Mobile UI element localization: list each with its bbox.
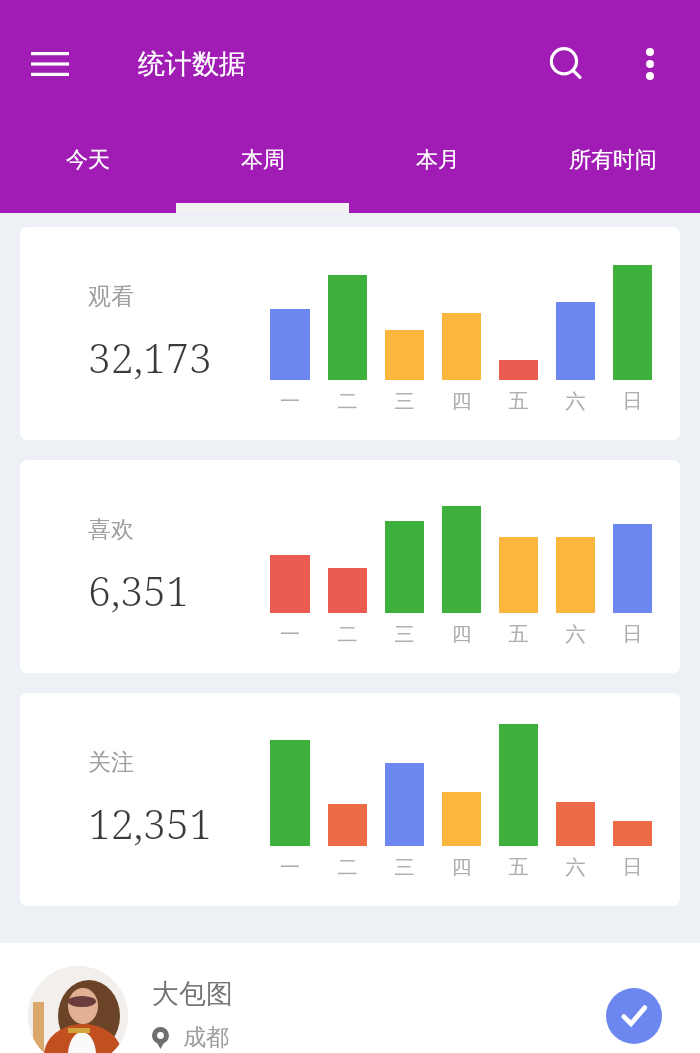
staticText: 五 [499, 389, 538, 414]
button[interactable]: 喜欢 [20, 460, 680, 673]
staticText: 一 [270, 389, 310, 414]
staticText: 三 [385, 389, 424, 414]
button[interactable]: Menu [22, 36, 78, 92]
staticText: 日 [613, 622, 652, 647]
button[interactable]: 关注 [20, 693, 680, 906]
staticText: 12,351 [88, 795, 212, 851]
staticText: 一 [270, 622, 310, 647]
staticText: 六 [556, 389, 595, 414]
staticText: 二 [328, 855, 367, 880]
staticText: 喜欢 [88, 515, 134, 544]
staticText: 所有时间 [569, 146, 657, 174]
button[interactable]: 今天 [0, 128, 175, 213]
staticText: 统计数据 [138, 47, 246, 81]
button[interactable]: 所有时间 [525, 128, 700, 213]
staticText: 六 [556, 622, 595, 647]
staticText: 四 [442, 389, 481, 414]
staticText: 二 [328, 389, 367, 414]
staticText: 二 [328, 622, 367, 647]
button[interactable]: More options [624, 38, 676, 90]
staticText: 三 [385, 855, 424, 880]
button[interactable]: Follow [606, 988, 662, 1044]
staticText: 日 [613, 389, 652, 414]
staticText: 六 [556, 855, 595, 880]
button[interactable]: 本月 [350, 128, 525, 213]
button[interactable]: 本周 [175, 128, 350, 213]
staticText: 四 [442, 622, 481, 647]
staticText: 本周 [241, 146, 285, 174]
staticText: 6,351 [88, 562, 189, 618]
button[interactable]: Search [538, 36, 594, 92]
staticText: 32,173 [88, 329, 212, 385]
button[interactable]: 大包图 [0, 943, 700, 1053]
staticText: 日 [613, 855, 652, 880]
staticText: 今天 [66, 146, 110, 174]
staticText: 本月 [416, 146, 460, 174]
staticText: 四 [442, 855, 481, 880]
staticText: 观看 [88, 282, 134, 311]
button[interactable]: 观看 [20, 227, 680, 440]
staticText: 五 [499, 855, 538, 880]
staticText: 三 [385, 622, 424, 647]
staticText: 关注 [88, 748, 134, 777]
staticText: 一 [270, 855, 310, 880]
staticText: 成都 [183, 1023, 229, 1052]
staticText: 大包图 [152, 977, 233, 1011]
staticText: 五 [499, 622, 538, 647]
